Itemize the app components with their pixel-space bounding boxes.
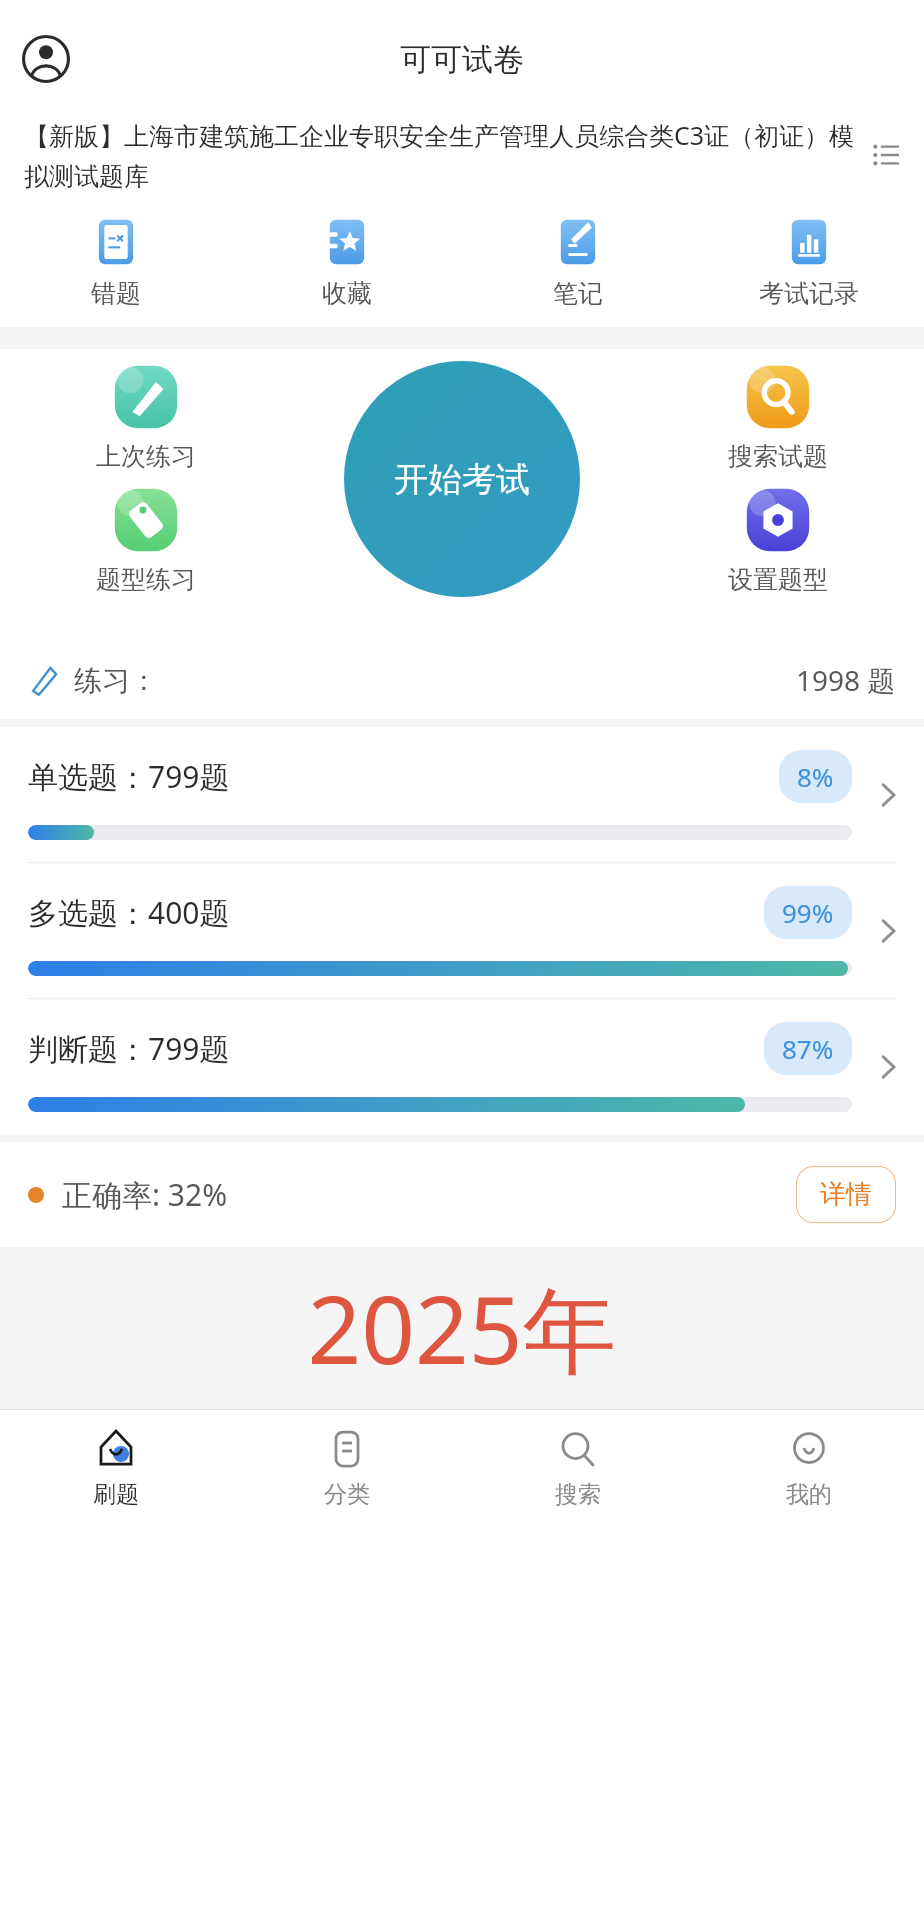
staticText: 笔记 [553, 278, 603, 309]
button[interactable]: 笔记 [462, 216, 693, 309]
button[interactable]: 我的 [693, 1410, 924, 1920]
staticText: 我的 [786, 1480, 832, 1509]
staticText: 练习： [74, 663, 158, 698]
button[interactable]: 错题 [0, 216, 231, 309]
staticText: 单选题：799题 [28, 756, 230, 797]
button[interactable]: 分类 [231, 1410, 462, 1920]
button[interactable]: Profile [14, 27, 78, 91]
button[interactable]: 判断题：799题 [0, 999, 924, 1134]
staticText: 8% [797, 759, 834, 794]
staticText: 2025年 [307, 1264, 617, 1392]
button[interactable]: 多选题：400题 [0, 863, 924, 998]
other: Open 判断题：799题 [852, 999, 924, 1134]
button[interactable]: 搜索试题 [702, 357, 854, 472]
staticText: 设置题型 [728, 564, 828, 595]
staticText: 开始考试 [394, 458, 530, 501]
staticText: 搜索试题 [728, 441, 828, 472]
staticText: 刷题 [93, 1480, 139, 1509]
button[interactable]: 详情 [796, 1166, 896, 1223]
staticText: 87% [782, 1031, 834, 1066]
button[interactable]: Question list [862, 131, 910, 179]
staticText: 上次练习 [96, 441, 196, 472]
button[interactable]: 刷题 [0, 1410, 231, 1920]
staticText: 收藏 [322, 278, 372, 309]
staticText: 1998 题 [796, 661, 896, 699]
button[interactable]: 搜索 [462, 1410, 693, 1920]
button[interactable]: 单选题：799题 [0, 727, 924, 862]
button[interactable]: 上次练习 [70, 357, 222, 472]
staticText: 分类 [324, 1480, 370, 1509]
other: Open 多选题：400题 [852, 863, 924, 998]
staticText: 题型练习 [96, 564, 196, 595]
staticText: 可可试卷 [400, 40, 524, 79]
button[interactable]: 题型练习 [70, 480, 222, 595]
other: Open 单选题：799题 [852, 727, 924, 862]
staticText: 正确率: 32% [62, 1174, 228, 1215]
button[interactable]: 收藏 [231, 216, 462, 309]
button[interactable]: 设置题型 [702, 480, 854, 595]
staticText: 多选题：400题 [28, 892, 230, 933]
staticText: 详情 [820, 1178, 872, 1211]
staticText: 搜索 [555, 1480, 601, 1509]
staticText: 错题 [91, 278, 141, 309]
staticText: 99% [782, 895, 834, 930]
staticText: 考试记录 [759, 278, 859, 309]
button[interactable]: 开始考试 [344, 361, 580, 597]
staticText: 判断题：799题 [28, 1028, 230, 1069]
staticText: 【新版】上海市建筑施工企业专职安全生产管理人员综合类C3证（初证）模拟测试题库 [24, 118, 862, 192]
button[interactable]: 考试记录 [693, 216, 924, 309]
